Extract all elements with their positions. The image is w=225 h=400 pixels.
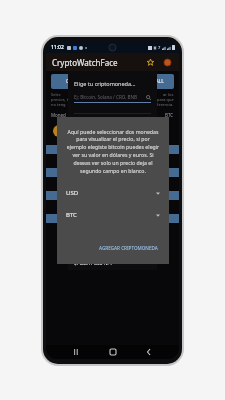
staticText: 7 [158, 45, 161, 50]
staticText: BTC [66, 211, 77, 219]
staticText: Selec [51, 92, 61, 97]
button[interactable]: USD [66, 189, 160, 197]
staticText: Elige tu criptomoneda... [74, 80, 136, 87]
staticText: $MVDOGE Metaverse Doge [74, 246, 136, 253]
staticText: Moned [51, 112, 66, 118]
button[interactable]: Recent apps [69, 345, 83, 359]
staticText: BTC [165, 112, 174, 118]
staticText: C [66, 78, 70, 85]
staticText: CryptoWatchFace [52, 57, 118, 68]
button[interactable]: AGREGAR CRIPTOMONEDA [97, 243, 160, 253]
staticText: Aquí puede seleccionar dos monedas para … [66, 128, 160, 175]
staticText: ferencia. [157, 102, 174, 107]
button[interactable]: Back [142, 345, 156, 359]
button[interactable]: Home [106, 345, 120, 359]
button[interactable]: Profile [161, 56, 173, 68]
button[interactable]: $PIZZA Pizza NFT [68, 256, 157, 270]
button[interactable]: Favorites [144, 56, 156, 68]
button[interactable]: Ej: Bitcoin, Solana / CRO, BNB [74, 94, 151, 100]
button[interactable]: BTC [66, 211, 160, 219]
staticText: $PIZZA Pizza NFT [74, 260, 113, 267]
button[interactable]: $MVDOGE Metaverse Doge [68, 242, 157, 256]
staticText: para que [157, 97, 174, 102]
button[interactable]: $KRAUSE KRAUSE [68, 214, 157, 228]
staticText: precios, t [51, 97, 69, 102]
staticText: AGREGAR CRIPTOMONEDA [99, 245, 158, 251]
staticText: R ALL [151, 78, 164, 85]
staticText: 11:02 [51, 44, 64, 51]
staticText: USD [66, 189, 79, 197]
staticText: Ej: Bitcoin, Solana / CRO, BNB [74, 94, 138, 100]
button[interactable]: R ALL [141, 74, 174, 89]
staticText: no teng [51, 102, 66, 107]
button[interactable]: C [51, 74, 84, 89]
staticText: ar los [163, 92, 174, 97]
